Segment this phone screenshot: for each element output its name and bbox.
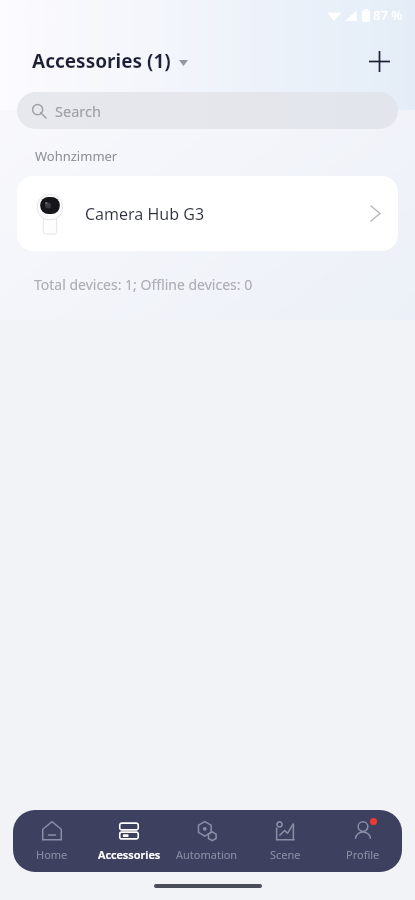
button[interactable]: Scene: [246, 810, 324, 872]
staticText: Total devices: 1; Offline devices: 0: [34, 275, 253, 294]
button[interactable]: Add accessory: [357, 39, 401, 83]
button[interactable]: Accessories (1): [30, 42, 190, 80]
staticText: Wohnzimmer: [35, 147, 118, 165]
staticText: Accessories: [98, 847, 161, 862]
button[interactable]: Search: [17, 92, 398, 129]
button[interactable]: Accessories: [90, 810, 168, 872]
staticText: Automation: [176, 847, 238, 862]
button[interactable]: Camera Hub G3: [17, 176, 398, 251]
staticText: Profile: [346, 847, 380, 862]
staticText: Scene: [270, 847, 301, 862]
button[interactable]: Automation: [168, 810, 246, 872]
button[interactable]: Home: [13, 810, 90, 872]
staticText: Accessories (1): [32, 48, 171, 74]
staticText: Camera Hub G3: [85, 203, 371, 225]
staticText: Home: [36, 847, 68, 862]
staticText: Search: [55, 101, 101, 121]
button[interactable]: Profile: [324, 810, 402, 872]
staticText: 87 %: [373, 6, 403, 24]
